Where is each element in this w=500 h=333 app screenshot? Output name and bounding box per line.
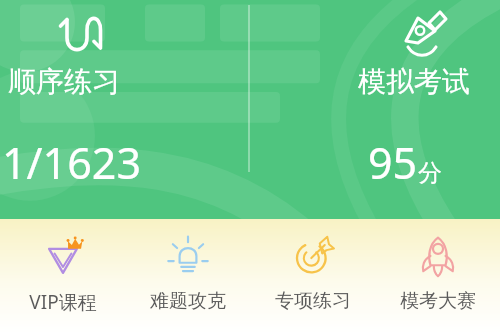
button[interactable]: 模考大赛 (375, 219, 500, 333)
staticText: 分 (418, 158, 442, 188)
staticText: 1/1623 (2, 133, 141, 192)
staticText: 难题攻克 (150, 289, 226, 313)
staticText: 专项练习 (275, 289, 351, 313)
staticText: 模拟考试 (358, 64, 470, 99)
other: Sequential practice (52, 9, 102, 59)
button[interactable]: Sequential practice (0, 0, 248, 219)
button[interactable]: 专项练习 (250, 219, 375, 333)
staticText: VIP课程 (29, 289, 97, 315)
other: Mock exam (398, 8, 448, 58)
button[interactable]: Mock exam (250, 0, 500, 219)
staticText: 顺序练习 (8, 64, 120, 99)
staticText: 模考大赛 (400, 289, 476, 313)
staticText: 95 (368, 133, 418, 192)
button[interactable]: 难题攻克 (125, 219, 250, 333)
button[interactable]: VIP课程 (0, 219, 125, 333)
